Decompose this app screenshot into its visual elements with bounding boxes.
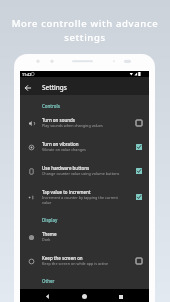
button[interactable]: Turn on vibration <box>129 139 149 155</box>
button[interactable]: Tap value to increment <box>129 189 149 205</box>
button[interactable]: Use hardware buttons <box>20 156 149 180</box>
button[interactable]: Turn on sounds <box>129 115 149 131</box>
staticText: Increment a counter by tapping the curre… <box>42 195 126 205</box>
staticText: Play sounds when changing values <box>42 123 103 128</box>
staticText: Change counter value using volume button… <box>42 171 120 176</box>
button[interactable]: Use hardware buttons <box>129 163 149 179</box>
staticText: Use hardware buttons <box>42 165 90 171</box>
staticText: Vibrate on value changes <box>42 147 86 152</box>
button[interactable]: Theme <box>20 222 149 246</box>
button[interactable]: Recent apps <box>112 289 130 302</box>
button[interactable]: Keep the screen on <box>129 253 149 269</box>
staticText: Turn on vibration <box>42 141 79 147</box>
staticText: Controls <box>42 103 60 109</box>
button[interactable]: Tap value to increment <box>20 180 149 209</box>
staticText: More controlle with advance settings <box>7 17 163 43</box>
staticText: Display <box>42 217 58 223</box>
staticText: Dark <box>42 237 51 242</box>
staticText: Keep the screen on while app is active <box>42 261 109 266</box>
button[interactable]: Back <box>38 289 56 302</box>
button[interactable]: Turn on vibration <box>20 132 149 156</box>
button[interactable]: Home <box>75 289 93 302</box>
staticText: Theme <box>42 231 57 237</box>
staticText: Other <box>42 278 55 284</box>
button[interactable]: Keep the screen on <box>20 246 149 270</box>
staticText: Tap value to increment <box>42 189 91 195</box>
staticText: Keep the screen on <box>42 255 83 261</box>
button[interactable]: Turn on sounds <box>20 108 149 132</box>
button[interactable]: Back <box>21 79 35 97</box>
staticText: Settings <box>42 83 67 92</box>
staticText: 11:42 <box>22 72 32 77</box>
staticText: Turn on sounds <box>42 117 75 123</box>
